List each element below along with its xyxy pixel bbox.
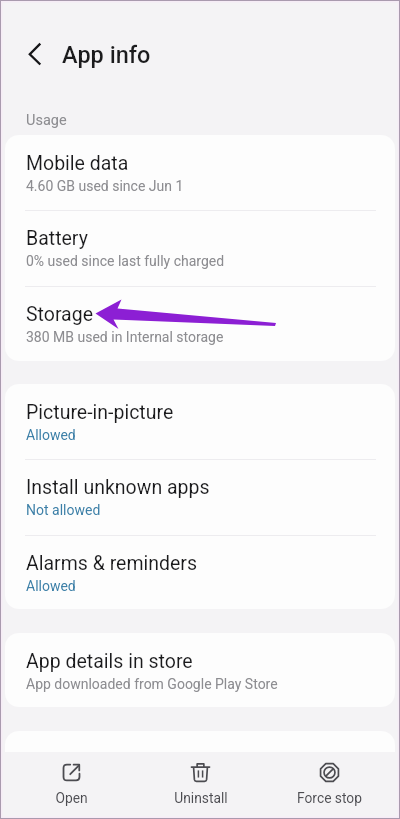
staticText: Battery bbox=[26, 227, 88, 250]
staticText: Open bbox=[55, 790, 88, 806]
staticText: App details in store bbox=[26, 650, 193, 673]
button[interactable]: Uninstall bbox=[136, 752, 265, 819]
staticText: Mobile data bbox=[26, 152, 129, 175]
staticText: App downloaded from Google Play Store bbox=[26, 676, 278, 692]
staticText: 4.60 GB used since Jun 1 bbox=[26, 178, 184, 194]
staticText: Force stop bbox=[297, 790, 362, 806]
button[interactable]: Battery bbox=[5, 210, 395, 285]
staticText: Install unknown apps bbox=[26, 476, 210, 499]
staticText: Storage bbox=[26, 303, 94, 326]
button[interactable]: Storage bbox=[5, 286, 395, 361]
staticText: Allowed bbox=[26, 427, 76, 443]
button[interactable]: Mobile data bbox=[5, 135, 395, 210]
button[interactable]: Open bbox=[6, 752, 136, 819]
button[interactable]: App details in store bbox=[5, 633, 395, 707]
button[interactable]: Force stop bbox=[265, 752, 394, 819]
staticText: 380 MB used in Internal storage bbox=[26, 329, 224, 345]
staticText: Uninstall bbox=[174, 790, 228, 806]
staticText: Not allowed bbox=[26, 502, 101, 518]
staticText: Picture-in-picture bbox=[26, 401, 174, 424]
staticText: Alarms & reminders bbox=[26, 552, 198, 575]
staticText: 0% used since last fully charged bbox=[26, 253, 225, 269]
staticText: App info bbox=[62, 41, 151, 69]
button[interactable]: Alarms & reminders bbox=[5, 535, 395, 609]
staticText: Usage bbox=[26, 112, 67, 129]
button[interactable]: Picture-in-picture bbox=[5, 384, 395, 459]
staticText: Allowed bbox=[26, 578, 76, 594]
button[interactable]: Install unknown apps bbox=[5, 459, 395, 534]
button[interactable]: Back bbox=[17, 35, 57, 75]
